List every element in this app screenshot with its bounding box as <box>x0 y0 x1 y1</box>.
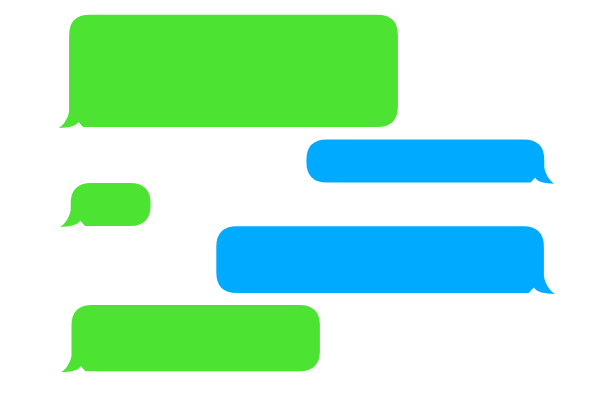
button[interactable]: Message 2 <box>306 140 544 183</box>
button[interactable]: Message 1 <box>69 15 398 127</box>
button[interactable]: Message 3 <box>71 183 151 226</box>
button[interactable]: Message 4 <box>216 226 544 293</box>
button[interactable]: Message 5 <box>72 305 320 371</box>
other: Conversation <box>0 0 600 416</box>
